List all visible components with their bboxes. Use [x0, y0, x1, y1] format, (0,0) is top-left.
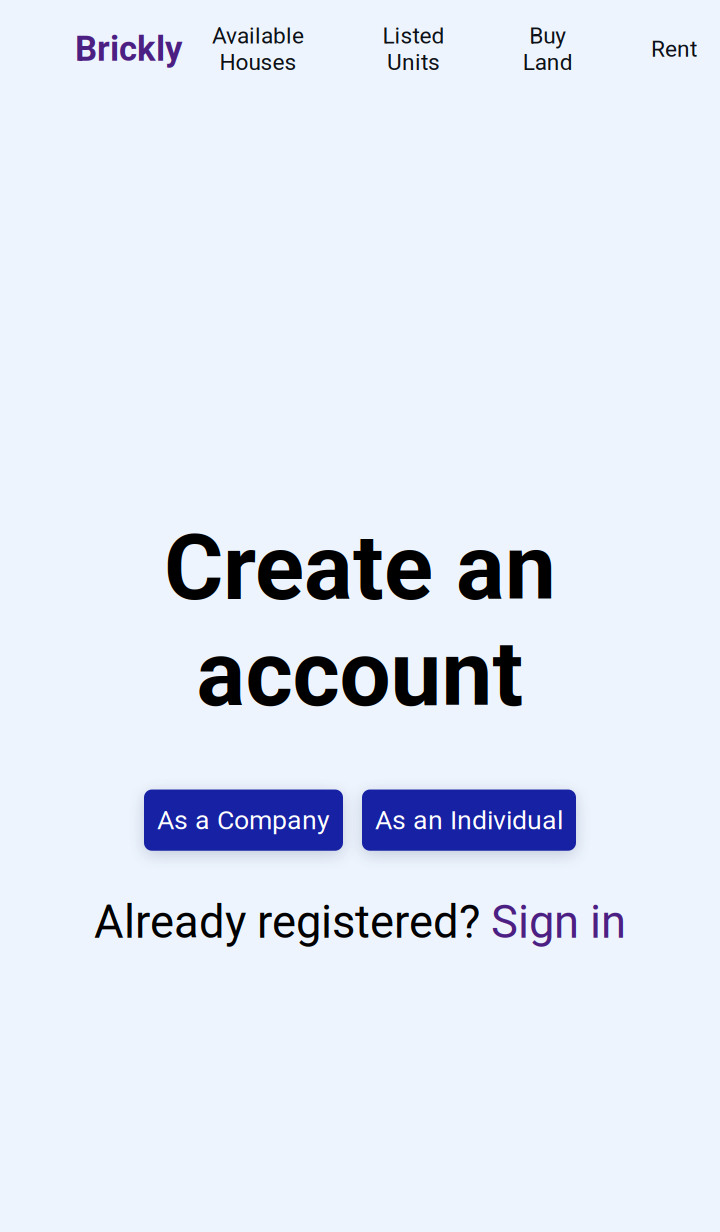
staticText: Units	[387, 49, 440, 76]
button[interactable]: Rent	[651, 36, 697, 62]
staticText: Sign in	[491, 896, 626, 949]
button[interactable]: As an Individual	[362, 789, 576, 851]
button[interactable]: Available	[212, 22, 304, 75]
button[interactable]: Listed	[382, 22, 444, 75]
button[interactable]: As a Company	[144, 789, 343, 851]
staticText: Brickly	[75, 29, 182, 69]
staticText: Create an	[164, 515, 556, 621]
staticText: Available	[212, 22, 304, 49]
staticText: As a Company	[157, 804, 330, 836]
staticText: Buy	[529, 22, 566, 49]
button[interactable]: Brickly	[75, 29, 182, 69]
staticText: Houses	[220, 49, 297, 76]
staticText: Listed	[382, 22, 444, 49]
staticText: Already registered?	[94, 896, 491, 949]
staticText: Rent	[651, 36, 697, 62]
button[interactable]: Buy	[523, 22, 573, 75]
staticText: account	[196, 621, 523, 728]
staticText: As an Individual	[375, 804, 563, 836]
staticText: Land	[523, 49, 573, 76]
button[interactable]: Sign in	[491, 896, 626, 949]
